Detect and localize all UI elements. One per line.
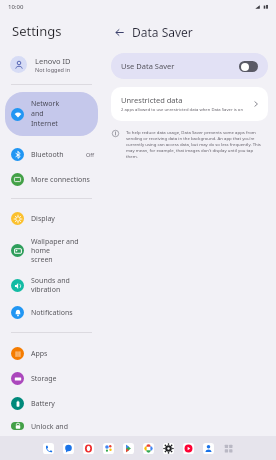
button[interactable]: Use Data Saver toggle [239, 61, 258, 72]
staticText: Battery [31, 399, 95, 409]
button[interactable]: Lenovo ID [0, 52, 103, 77]
staticText: Unlock and security [31, 422, 95, 430]
staticText: Wallpaper and home screen [31, 237, 95, 264]
button[interactable]: Use Data Saver [111, 53, 268, 79]
staticText: To help reduce data usage, Data Saver pr… [126, 129, 262, 159]
button[interactable]: Phone [41, 441, 56, 456]
staticText: Not logged in [35, 66, 71, 73]
button[interactable]: Unrestricted data [111, 87, 268, 121]
button[interactable]: Notifications [0, 300, 103, 325]
staticText: Display [31, 214, 95, 224]
button[interactable]: Opera [81, 441, 96, 456]
staticText: and [31, 109, 44, 119]
button[interactable]: Network [5, 92, 98, 136]
button[interactable]: YouTube Music [181, 441, 196, 456]
staticText: Unrestricted data [121, 95, 183, 105]
button[interactable]: Contacts [201, 441, 216, 456]
staticText: Notifications [31, 308, 95, 318]
staticText: Off [86, 151, 95, 158]
staticText: Storage [31, 374, 95, 384]
staticText: Internet [31, 119, 58, 129]
staticText: Settings [12, 22, 62, 40]
button[interactable]: More connections [0, 167, 103, 192]
staticText: 2 apps allowed to use unrestricted data … [121, 107, 243, 113]
button[interactable]: Wallpaper and home screen [0, 231, 103, 270]
staticText: Bluetooth [31, 150, 86, 160]
button[interactable]: Google Photos [141, 441, 156, 456]
button[interactable]: Apps [0, 341, 103, 366]
staticText: Use Data Saver [121, 61, 239, 71]
staticText: More connections [31, 175, 95, 185]
button[interactable]: Messages [61, 441, 76, 456]
staticText: Lenovo ID [35, 56, 71, 66]
button[interactable]: Play Store [121, 441, 136, 456]
button[interactable]: Display [0, 206, 103, 231]
staticText: Sounds and vibration [31, 276, 95, 294]
button[interactable]: Back [109, 22, 129, 42]
button[interactable]: All apps [221, 441, 236, 456]
staticText: Network [31, 99, 60, 109]
button[interactable]: Photos [101, 441, 116, 456]
button[interactable]: Storage [0, 366, 103, 391]
button[interactable]: Unlock and security [0, 416, 103, 436]
button[interactable]: Settings [161, 441, 176, 456]
staticText: Data Saver [132, 24, 193, 40]
button[interactable]: Sounds and vibration [0, 270, 103, 300]
button[interactable]: Battery [0, 391, 103, 416]
staticText: Apps [31, 349, 95, 359]
button[interactable]: Bluetooth [0, 142, 103, 167]
staticText: 10:00 [8, 3, 24, 11]
